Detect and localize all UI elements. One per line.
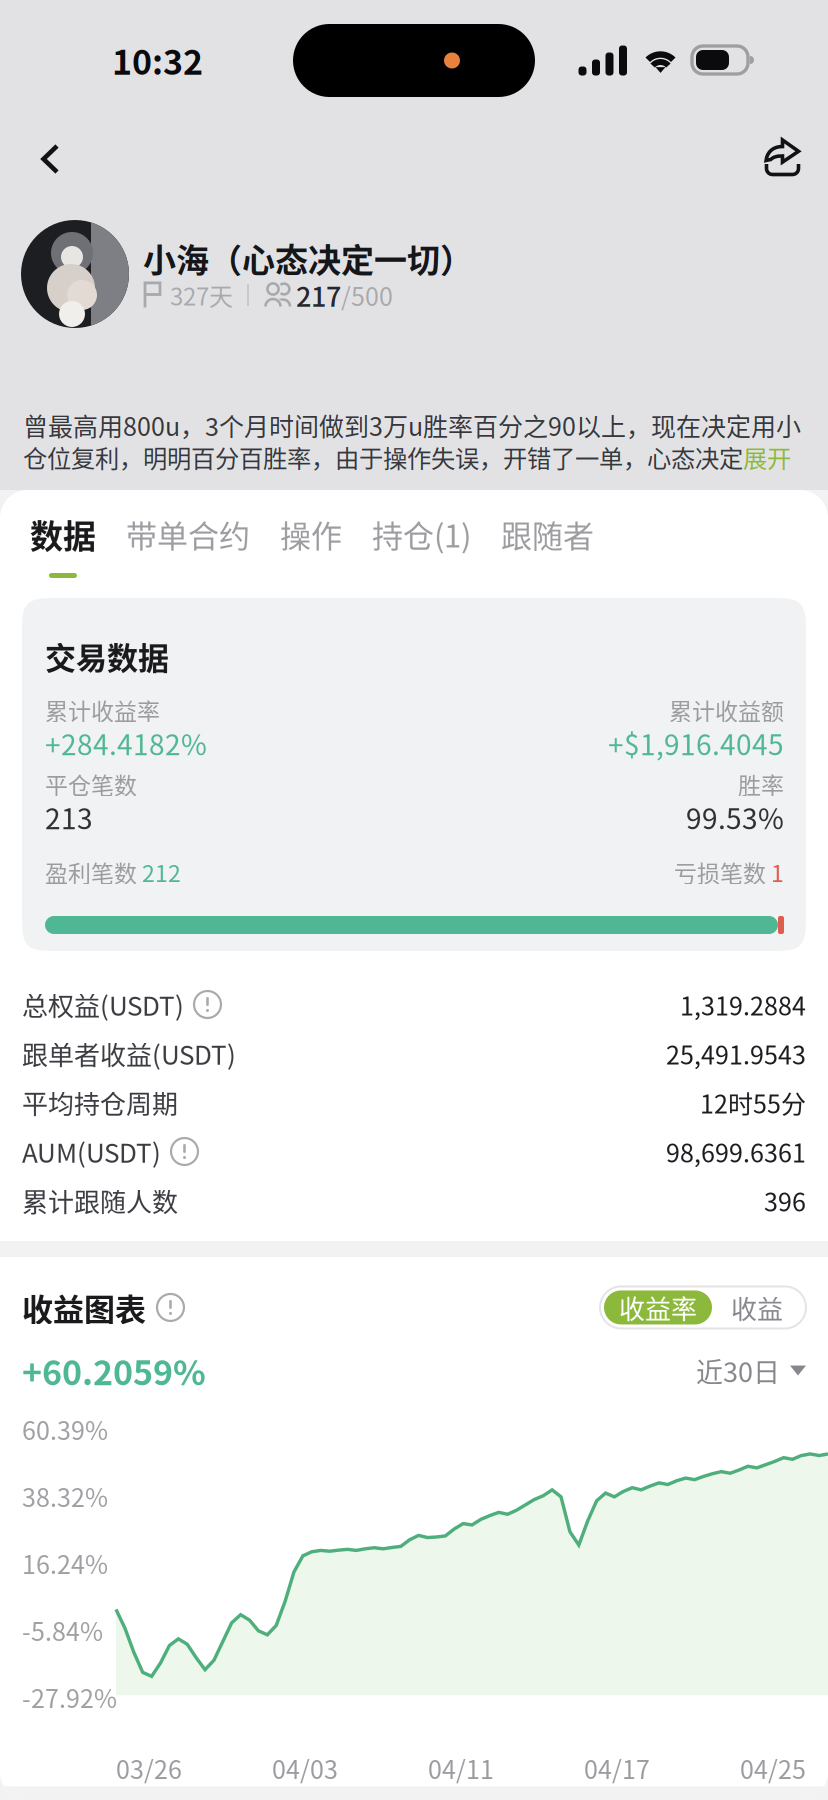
staticText: 99.53% <box>686 797 784 837</box>
staticText: +60.2059% <box>22 1346 206 1395</box>
staticText: 213 <box>45 797 93 837</box>
staticText: 04/03 <box>272 1750 338 1786</box>
staticText: 数据 <box>30 510 96 558</box>
staticText: 胜率 <box>738 767 784 801</box>
staticText: 收益图表 <box>22 1285 146 1330</box>
staticText: 持仓(1) <box>372 512 471 556</box>
staticText: AUM(USDT) <box>22 1133 161 1170</box>
staticText: 04/11 <box>428 1750 494 1786</box>
staticText: 累计跟随人数 <box>22 1182 178 1219</box>
staticText: 04/25 <box>740 1750 806 1786</box>
staticText: -27.92% <box>22 1679 117 1715</box>
staticText: +284.4182% <box>45 723 207 763</box>
staticText: 12时55分 <box>700 1084 806 1121</box>
staticText: 交易数据 <box>45 634 169 678</box>
staticText: 展开 <box>743 439 791 475</box>
staticText: 近30日 <box>696 1351 780 1390</box>
staticText: 60.39% <box>22 1411 108 1447</box>
staticText: 曾最高用800u，3个月时间做到3万u胜率百分之90以上，现在决定用小 <box>23 407 801 443</box>
staticText: 04/17 <box>584 1750 650 1786</box>
staticText: /500 <box>341 277 393 313</box>
staticText: +$1,916.4045 <box>608 723 784 763</box>
staticText: 03/26 <box>116 1750 182 1786</box>
button[interactable]: Share <box>721 118 828 189</box>
staticText: 平均持仓周期 <box>22 1084 178 1121</box>
staticText: 1 <box>771 855 784 889</box>
button[interactable]: 平均持仓周期 <box>0 1078 828 1127</box>
button[interactable]: 持仓(1) <box>372 515 471 578</box>
staticText: 亏损笔数 <box>674 855 771 889</box>
button[interactable]: Back <box>0 119 104 189</box>
button[interactable]: 展开 <box>743 439 791 475</box>
button[interactable]: 跟单者收益(USDT) <box>0 1029 828 1078</box>
staticText: 396 <box>764 1182 806 1219</box>
button[interactable]: 近30日 <box>696 1351 806 1390</box>
button[interactable]: 收益率 <box>604 1290 712 1324</box>
staticText: 25,491.9543 <box>666 1035 806 1072</box>
button[interactable]: 跟随者 <box>501 515 594 578</box>
button[interactable]: 收益 <box>712 1290 802 1324</box>
staticText: 累计收益额 <box>669 693 784 727</box>
staticText: 收益率 <box>619 1289 697 1326</box>
staticText: 98,699.6361 <box>666 1133 806 1170</box>
staticText: 跟随者 <box>501 512 594 556</box>
staticText: 38.32% <box>22 1478 108 1514</box>
staticText: 217 <box>296 275 341 315</box>
staticText: 收益 <box>731 1289 783 1326</box>
button[interactable]: 数据 <box>30 515 96 578</box>
staticText: 平仓笔数 <box>45 767 137 801</box>
button[interactable]: 累计跟随人数 <box>0 1176 828 1225</box>
staticText: 总权益(USDT) <box>22 986 184 1023</box>
staticText: 1,319.2884 <box>680 986 806 1023</box>
staticText: 小海（心态决定一切） <box>143 234 473 282</box>
staticText: -5.84% <box>22 1612 103 1648</box>
staticText: 带单合约 <box>126 512 250 556</box>
staticText: 212 <box>142 855 181 889</box>
button[interactable]: 操作 <box>280 515 342 578</box>
staticText: 仓位复利，明明百分百胜率，由于操作失误，开错了一单，心态决定 <box>23 439 743 475</box>
button[interactable]: 总权益(USDT) <box>0 980 828 1029</box>
staticText: 10:32 <box>112 35 203 85</box>
staticText: 盈利笔数 <box>45 855 142 889</box>
staticText: 操作 <box>280 512 342 556</box>
staticText: 327天 <box>170 278 233 312</box>
button[interactable]: AUM(USDT) <box>0 1127 828 1176</box>
staticText: 跟单者收益(USDT) <box>22 1035 236 1072</box>
staticText: 16.24% <box>22 1545 108 1581</box>
staticText: 累计收益率 <box>45 693 160 727</box>
button[interactable]: 带单合约 <box>126 515 250 578</box>
